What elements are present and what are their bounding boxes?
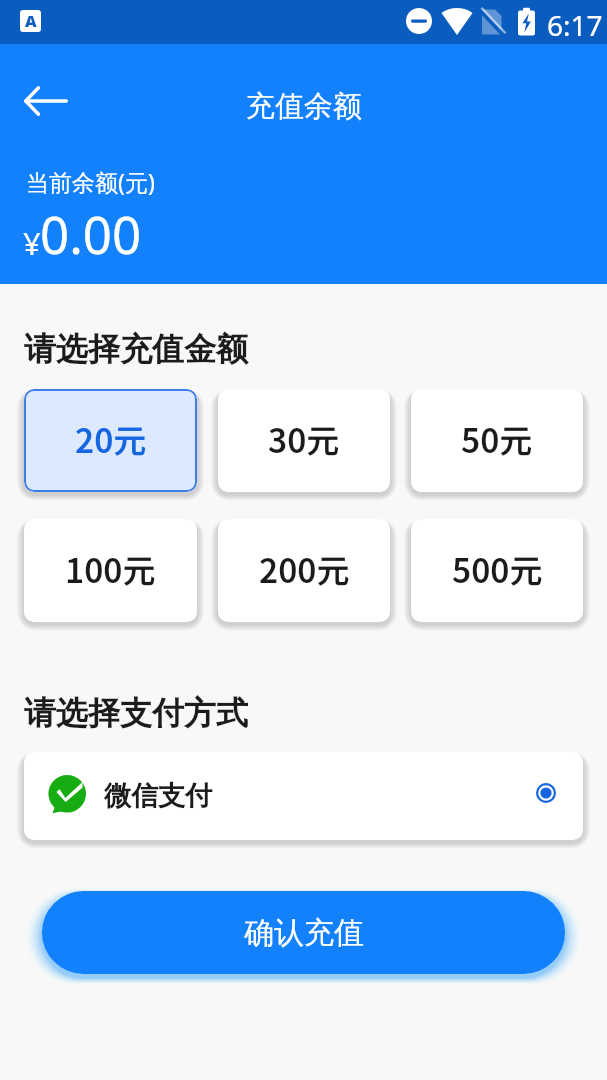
button[interactable]: 20元 — [24, 389, 197, 492]
staticText: 50元 — [461, 415, 533, 463]
button[interactable]: 200元 — [218, 519, 390, 622]
button[interactable]: 微信支付 — [24, 752, 583, 840]
staticText: 请选择支付方式 — [24, 693, 248, 733]
staticText: 充值余额 — [246, 88, 362, 125]
staticText: 200元 — [259, 545, 350, 593]
staticText: 30元 — [268, 415, 340, 463]
button[interactable]: 500元 — [411, 519, 583, 622]
staticText: 20元 — [75, 415, 147, 463]
staticText: 当前余额(元) — [26, 166, 155, 197]
staticText: 6:17 — [547, 6, 603, 44]
staticText: 500元 — [452, 545, 543, 593]
button[interactable]: 30元 — [218, 389, 390, 492]
button[interactable]: 100元 — [24, 519, 197, 622]
staticText: ¥ — [23, 222, 41, 264]
button[interactable]: 确认充值 — [42, 891, 565, 974]
button[interactable]: Back — [20, 75, 72, 127]
staticText: 请选择充值金额 — [24, 329, 248, 369]
button[interactable]: 50元 — [411, 389, 583, 492]
staticText: 确认充值 — [244, 914, 364, 952]
staticText: 100元 — [65, 545, 156, 593]
staticText: 微信支付 — [104, 779, 212, 813]
staticText: 0.00 — [40, 199, 142, 268]
staticText: A — [25, 10, 37, 32]
